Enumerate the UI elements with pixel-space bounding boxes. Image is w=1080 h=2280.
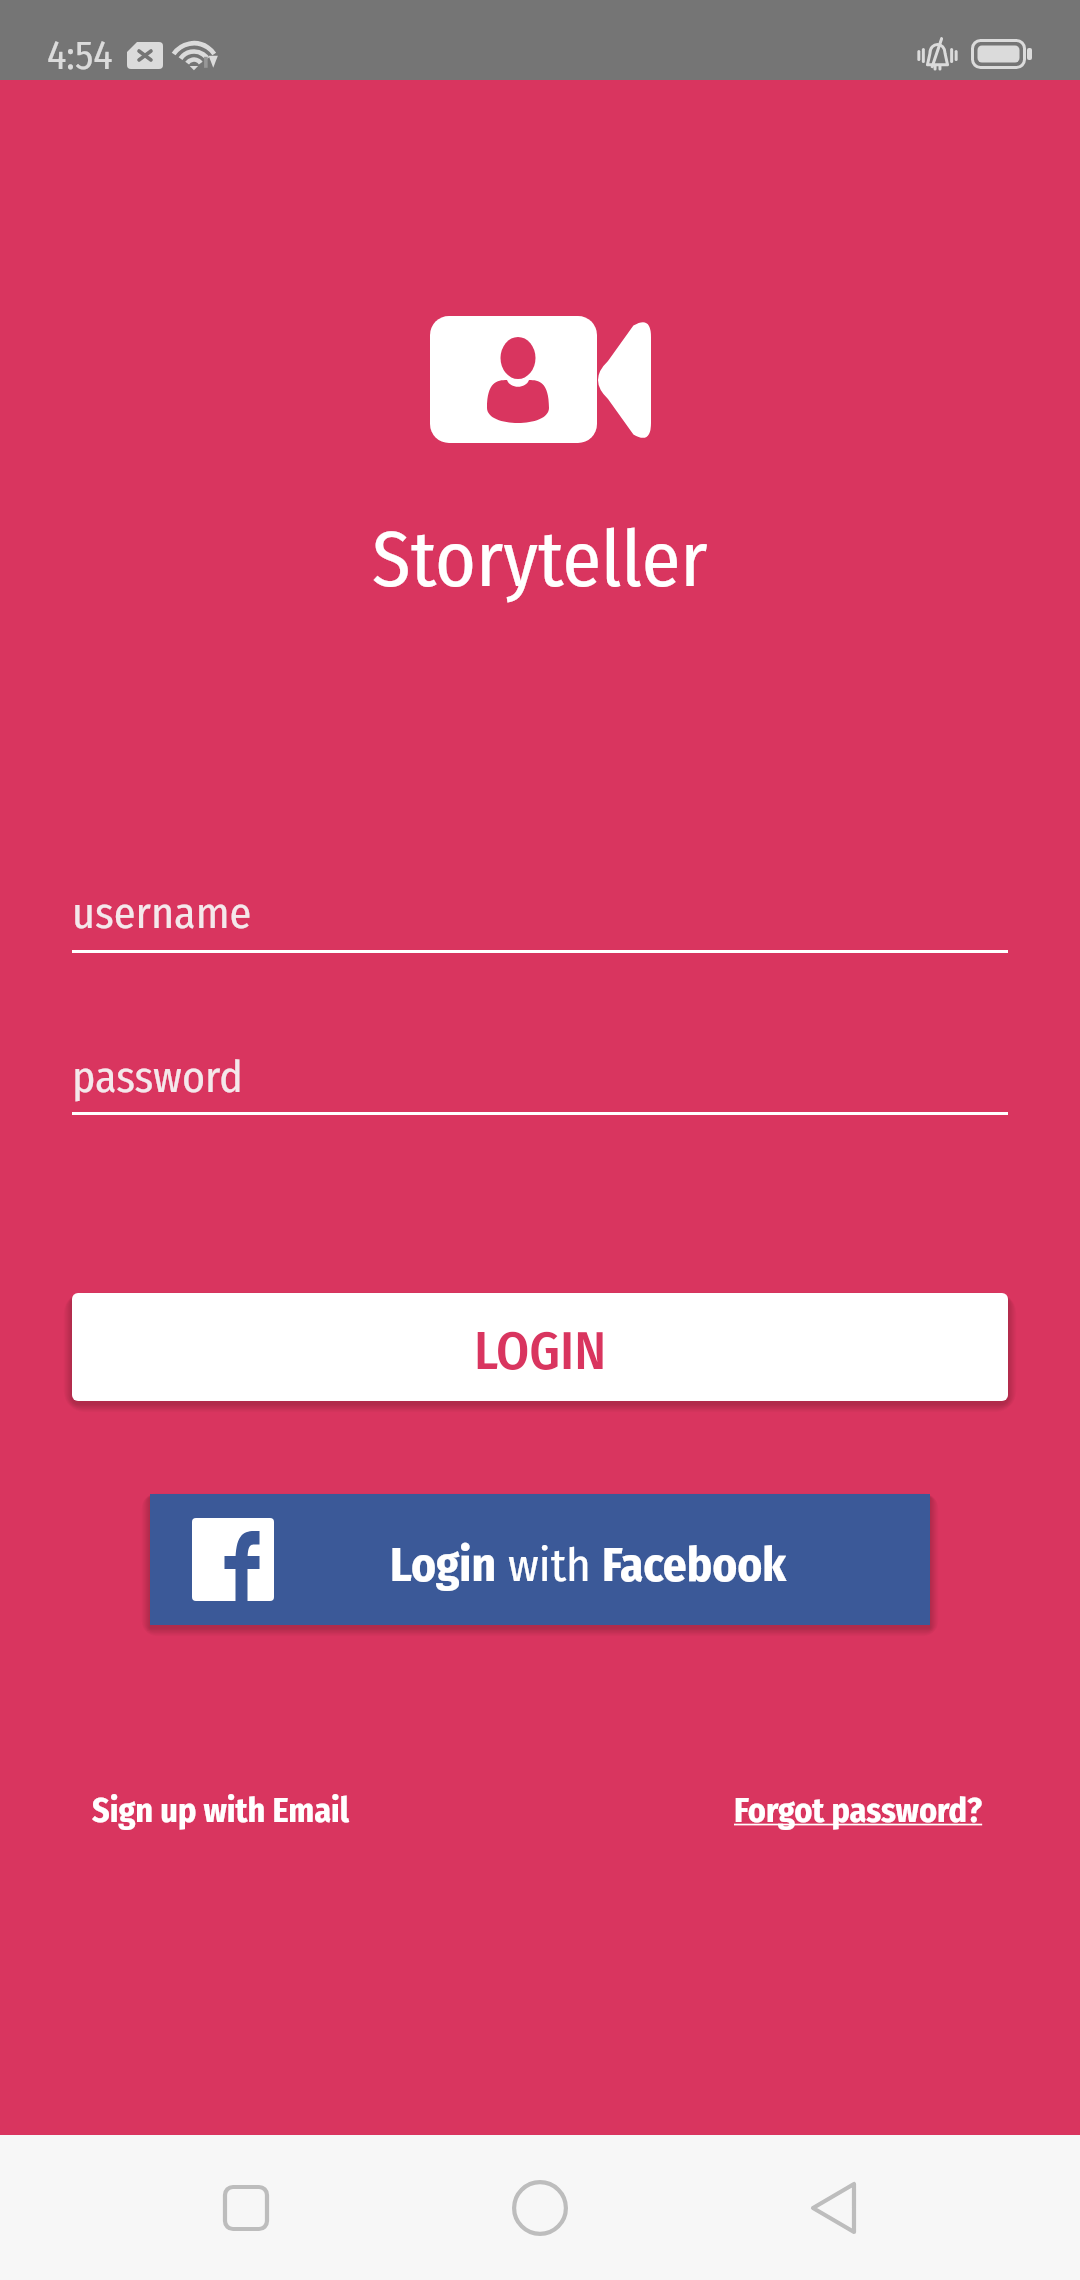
staticText: with <box>497 1537 602 1593</box>
staticText: Forgot password? <box>734 1790 983 1831</box>
staticText: Facebook <box>602 1537 787 1593</box>
staticText: password <box>72 1051 243 1104</box>
button[interactable]: Sign up with Email <box>92 1790 350 1831</box>
staticText: username <box>72 887 252 940</box>
button[interactable]: LOGIN <box>72 1293 1008 1401</box>
staticText: 4:54 <box>47 32 113 80</box>
button[interactable]: Back <box>767 2148 899 2268</box>
button[interactable]: Home <box>474 2148 606 2268</box>
button[interactable]: username <box>72 880 1008 953</box>
button[interactable]: password <box>72 1044 1008 1115</box>
staticText: Storyteller <box>372 513 708 607</box>
button[interactable]: Forgot password? <box>734 1790 983 1831</box>
button[interactable]: Login <box>150 1494 930 1625</box>
staticText: LOGIN <box>474 1319 607 1383</box>
button[interactable]: Recent apps <box>180 2148 312 2268</box>
staticText: Sign up with Email <box>92 1790 350 1831</box>
staticText: Login <box>390 1537 497 1593</box>
